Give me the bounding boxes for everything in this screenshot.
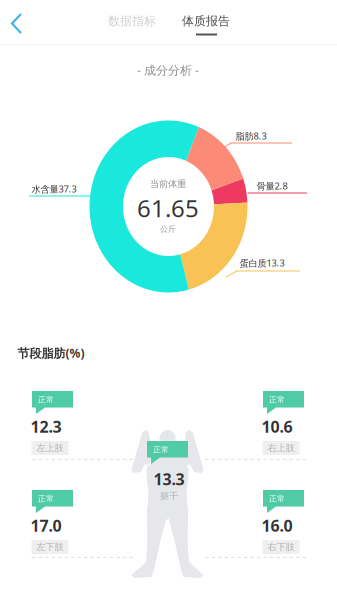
staticText: 正常 (269, 395, 285, 404)
staticText: 左上肢 (36, 442, 63, 454)
button[interactable]: 体质报告 (0, 0, 337, 600)
staticText: 右下肢 (267, 541, 294, 553)
staticText: 当前体重 (150, 178, 186, 190)
staticText: 脂肪8.3 (235, 130, 266, 142)
staticText: 左下肢 (36, 541, 63, 553)
button[interactable]: Back (0, 0, 337, 600)
staticText: 蛋白质13.3 (239, 257, 284, 269)
staticText: 躯干 (160, 490, 178, 502)
staticText: 数据指标 (108, 14, 156, 28)
staticText: 正常 (153, 445, 169, 454)
staticText: 骨量2.8 (256, 180, 287, 192)
staticText: 10.6 (261, 416, 292, 437)
staticText: 正常 (38, 395, 54, 404)
staticText: 13.3 (153, 468, 184, 490)
staticText: 体质报告 (182, 14, 230, 28)
staticText: 17.0 (30, 515, 61, 536)
staticText: 右上肢 (267, 442, 294, 454)
staticText: 16.0 (261, 515, 292, 536)
staticText: 正常 (38, 494, 54, 503)
staticText: 公斤 (160, 224, 176, 234)
staticText: 正常 (269, 494, 285, 503)
staticText: 水含量37.3 (31, 183, 76, 195)
staticText: 61.65 (137, 192, 199, 224)
staticText: 12.3 (30, 416, 61, 437)
staticText: 节段脂肪(%) (17, 345, 84, 361)
button[interactable]: 数据指标 (0, 0, 337, 600)
staticText: - 成分分析 - (137, 62, 199, 78)
